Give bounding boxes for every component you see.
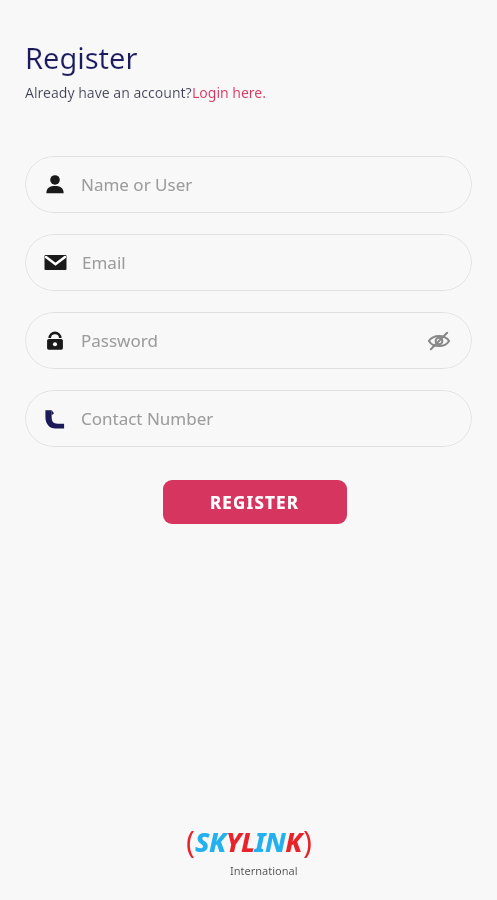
staticText: International — [230, 863, 298, 878]
staticText: SKYLINK — [195, 823, 303, 860]
button[interactable]: Name or User — [25, 156, 472, 213]
staticText: Email — [82, 251, 454, 274]
staticText: Login here. — [192, 83, 267, 102]
button[interactable]: REGISTER — [163, 480, 347, 524]
staticText: Register — [25, 38, 138, 77]
staticText: Password — [81, 329, 424, 352]
button[interactable]: Password — [25, 312, 472, 369]
staticText: ( — [186, 821, 195, 862]
staticText: ) — [303, 821, 312, 862]
staticText: Contact Number — [81, 407, 454, 430]
button[interactable]: Show password — [424, 326, 454, 356]
button[interactable]: Contact Number — [25, 390, 472, 447]
staticText: REGISTER — [210, 491, 300, 514]
staticText: Already have an account? — [25, 83, 192, 102]
button[interactable]: Email — [25, 234, 472, 291]
staticText: Name or User — [81, 173, 454, 196]
button[interactable]: Login here. — [192, 83, 267, 102]
